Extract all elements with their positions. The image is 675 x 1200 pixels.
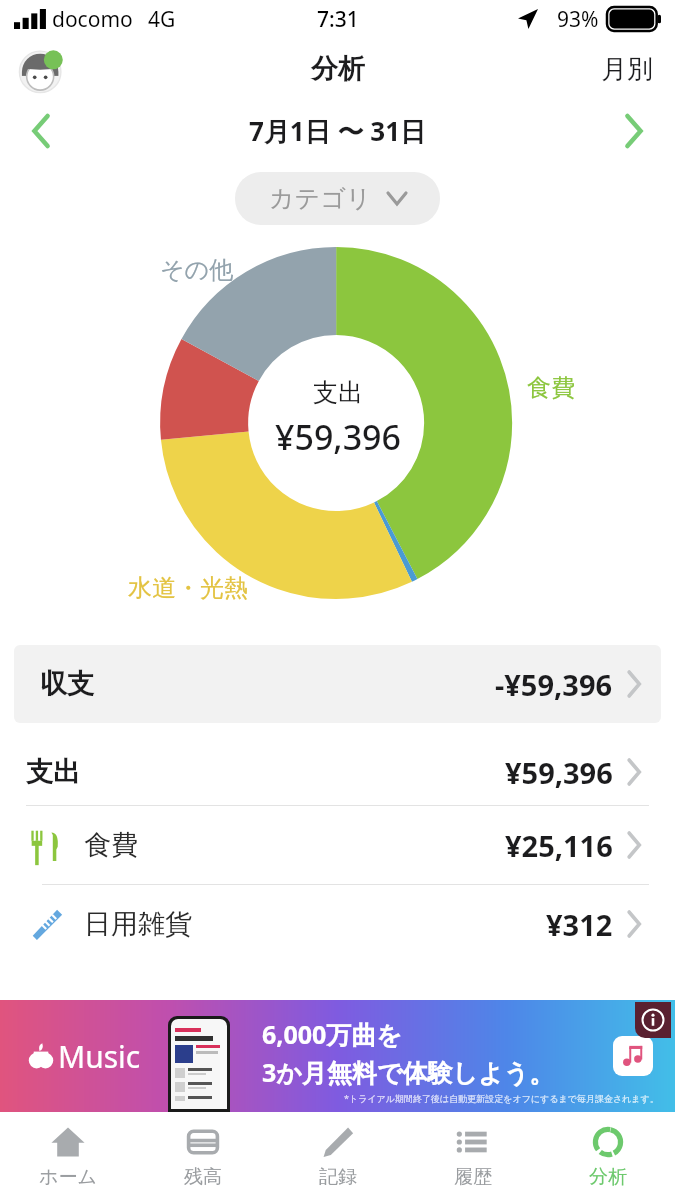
- button[interactable]: 記録: [270, 1112, 405, 1200]
- staticText: 7:31: [317, 5, 359, 34]
- staticText: その他: [160, 255, 234, 285]
- staticText: ホーム: [39, 1165, 97, 1189]
- staticText: ¥59,396: [505, 753, 613, 792]
- staticText: 月別: [601, 53, 653, 86]
- button[interactable]: ホーム: [0, 1112, 135, 1200]
- button[interactable]: 履歴: [405, 1112, 540, 1200]
- staticText: 支出: [313, 377, 363, 408]
- staticText: 記録: [319, 1165, 357, 1189]
- button[interactable]: カテゴリ: [235, 172, 440, 225]
- button[interactable]: Profile: [20, 45, 68, 93]
- button[interactable]: 月別: [593, 47, 661, 92]
- staticText: 食費: [84, 828, 138, 862]
- button[interactable]: Music: [0, 1000, 675, 1112]
- staticText: 93%: [557, 5, 599, 34]
- staticText: 残高: [184, 1165, 222, 1189]
- staticText: ¥25,116: [505, 826, 613, 865]
- staticText: 支出: [26, 755, 80, 789]
- staticText: ¥312: [546, 905, 613, 944]
- staticText: 6,000万曲を: [262, 1017, 402, 1051]
- staticText: 水道・光熱: [128, 573, 248, 603]
- button[interactable]: 分析: [540, 1112, 675, 1200]
- staticText: 7月1日 〜 31日: [249, 113, 427, 149]
- staticText: 4G: [148, 5, 176, 34]
- staticText: -¥59,396: [495, 665, 613, 704]
- staticText: カテゴリ: [269, 183, 372, 214]
- staticText: 3か月無料で体験しよう。: [262, 1055, 555, 1089]
- button[interactable]: Previous period: [18, 107, 66, 155]
- staticText: 分析: [589, 1165, 627, 1189]
- staticText: ¥59,396: [275, 414, 401, 460]
- button[interactable]: 支出: [0, 739, 675, 805]
- button[interactable]: 残高: [135, 1112, 270, 1200]
- staticText: Music: [58, 1036, 141, 1077]
- staticText: 収支: [40, 667, 94, 701]
- button[interactable]: 食費: [0, 806, 675, 884]
- button[interactable]: 日用雑貨: [0, 885, 675, 963]
- staticText: 履歴: [454, 1165, 492, 1189]
- staticText: 分析: [311, 52, 365, 86]
- button[interactable]: 収支: [14, 645, 661, 723]
- staticText: docomo: [52, 5, 133, 34]
- button[interactable]: Next period: [609, 107, 657, 155]
- staticText: 食費: [527, 373, 575, 403]
- staticText: *トライアル期間終了後は自動更新設定をオフにするまで毎月課金されます。: [344, 1092, 659, 1104]
- button[interactable]: Ad information: [635, 1002, 671, 1038]
- staticText: 日用雑貨: [84, 907, 192, 941]
